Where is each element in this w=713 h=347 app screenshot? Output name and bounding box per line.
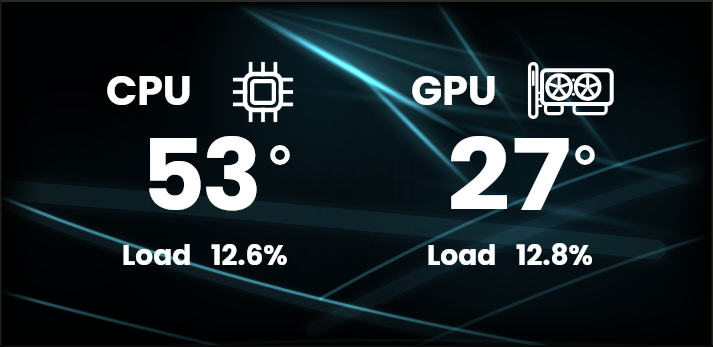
other: GPU — [527, 62, 613, 119]
staticText: 12.8% — [516, 236, 593, 275]
staticText: 12.6% — [211, 236, 288, 275]
staticText: GPU — [411, 62, 497, 119]
staticText: CPU — [106, 62, 192, 119]
staticText: 53 — [141, 106, 259, 245]
button[interactable]: CPU — [0, 0, 356, 347]
staticText: Load — [427, 236, 497, 275]
button[interactable]: GPU — [305, 0, 661, 347]
other: CPU — [232, 61, 296, 123]
staticText: Load — [122, 236, 192, 275]
staticText: 27 — [447, 106, 574, 245]
